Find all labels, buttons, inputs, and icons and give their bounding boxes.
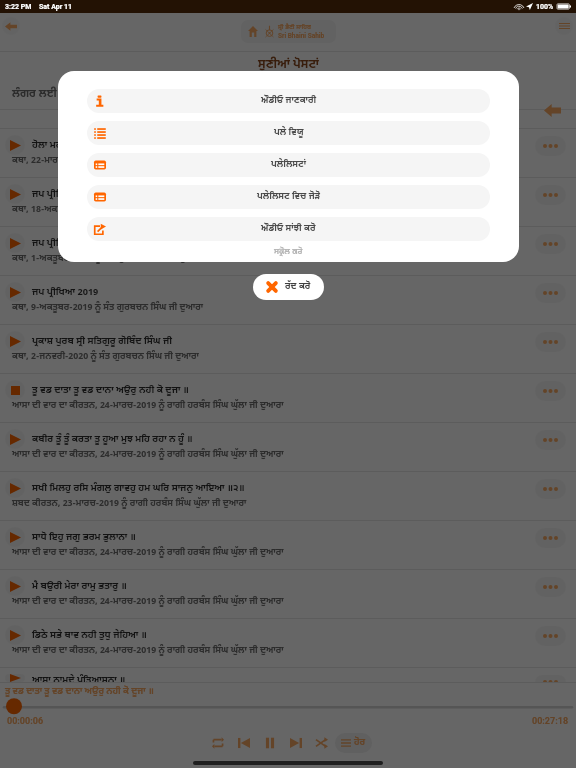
staticText: ਲੰਗਰ ਲਈ ਦਿੱਤੀ ਗਈ ਸੇਵਾ bbox=[12, 87, 121, 101]
button[interactable]: Shuffle bbox=[309, 730, 335, 756]
staticText: ਸ੍ਰੀ ਭੈਣੀ ਸਾਹਿਬ bbox=[278, 24, 311, 32]
button[interactable]: Menu bbox=[555, 17, 573, 35]
button[interactable]: ਸ੍ਰੀ ਭੈਣੀ ਸਾਹਿਬ bbox=[241, 20, 336, 43]
staticText: ਜਪ ਪ੍ਰੀਖਿਆ ਦੇ ਸਬੰਧ ਵਿਚ bbox=[32, 188, 123, 200]
button[interactable]: Play bbox=[0, 276, 576, 325]
button[interactable]: Pause bbox=[5, 380, 25, 400]
button[interactable]: Play bbox=[5, 233, 25, 253]
staticText: 3:22 PM bbox=[5, 3, 32, 11]
staticText: ਆਸਾ ਨਾਮਦੇ ਪ੍ਰੰਤਿਆਸਨਾ ॥ bbox=[32, 674, 126, 682]
button[interactable]: ਪਲੇਲਿਸਟ ਵਿਚ ਜੋੜੋ bbox=[87, 185, 490, 209]
staticText: ਹੋਲਾ ਮਹੱਲਾ ਦੇ ਸਬੰਧ ਵਿਚ bbox=[32, 139, 119, 151]
button[interactable]: More options bbox=[535, 675, 566, 682]
staticText: ਔਡੀਓ ਜਾਣਕਾਰੀ bbox=[261, 95, 317, 107]
staticText: ਕਬੀਰ ਤੂੰ ਤੂੰ ਕਰਤਾ ਤੂ ਹੂਆ ਮੁਝ ਮਹਿ ਰਹਾ ਨ ਹ… bbox=[32, 433, 193, 445]
staticText: ਪਲੇਲਿਸਟਾਂ bbox=[271, 159, 306, 171]
button[interactable]: More options bbox=[535, 283, 566, 303]
button[interactable]: Next bbox=[283, 730, 309, 756]
button[interactable]: Play bbox=[0, 570, 576, 619]
button[interactable]: Previous page bbox=[538, 96, 566, 124]
staticText: ਕਥਾ, 2-ਜਨਵਰੀ-2020 ਨੂੰ ਸੰਤ ਗੁਰਬਚਨ ਸਿੰਘ ਜੀ… bbox=[12, 351, 199, 363]
button[interactable]: Play bbox=[0, 129, 576, 178]
button[interactable]: Play bbox=[0, 423, 576, 472]
staticText: ਮੈ ਬਉਰੀ ਮੇਰਾ ਰਾਮੁ ਭਤਾਰੁ ॥ bbox=[32, 580, 127, 592]
button[interactable]: ਪਲੇਲਿਸਟਾਂ bbox=[87, 153, 490, 177]
button[interactable]: Play bbox=[5, 184, 25, 204]
button[interactable]: More options bbox=[535, 136, 566, 156]
staticText: ਸਖੀ ਮਿਲਹੁ ਰਸਿ ਮੰਗਲੁ ਗਾਵਹੁ ਹਮ ਘਰਿ ਸਾਜਨੁ ਆ… bbox=[32, 482, 245, 494]
staticText: ਸੁਣੀਆਂ ਪੋਸਟਾਂ bbox=[258, 57, 319, 73]
staticText: 3:22 PM bbox=[5, 3, 32, 11]
staticText: ਕਥਾ, 22-ਮਾਰਚ-2019 ਨੂੰ ਸੰਤ ਗੁਰਬਚਨ ਸਿੰਘ ਜੀ… bbox=[12, 155, 198, 167]
staticText: ਆਸਾ ਦੀ ਵਾਰ ਦਾ ਕੀਰਤਨ, 24-ਮਾਰਚ-2019 ਨੂੰ ਰਾ… bbox=[12, 449, 284, 461]
staticText: Sat Apr 11 bbox=[39, 3, 73, 11]
staticText: ਔਡੀਓ ਸਾਂਝੀ ਕਰੋ bbox=[261, 223, 316, 235]
button[interactable]: ਔਡੀਓ ਸਾਂਝੀ ਕਰੋ bbox=[87, 217, 490, 241]
staticText: ਸਕ੍ਰੋਲ ਕਰੋ bbox=[274, 247, 303, 257]
button[interactable]: ਹੋਰ bbox=[335, 733, 372, 753]
button[interactable]: More options bbox=[535, 381, 566, 401]
staticText: ਕਥਾ, 18-ਅਕਤੂਬਰ-2019 ਨੂੰ ਸੰਤ ਗੁਰਬਚਨ ਸਿੰਘ … bbox=[12, 204, 209, 216]
staticText: 00:27:18 bbox=[532, 716, 569, 727]
staticText: ਆਸਾ ਦੀ ਵਾਰ ਦਾ ਕੀਰਤਨ, 24-ਮਾਰਚ-2019 ਨੂੰ ਰਾ… bbox=[12, 596, 284, 608]
button[interactable]: Play bbox=[5, 527, 25, 547]
staticText: ਪਲੇ ਵਿਯੂ bbox=[274, 127, 304, 139]
button[interactable]: ਪਲੇ ਵਿਯੂ bbox=[87, 121, 490, 145]
button[interactable]: Play bbox=[0, 227, 576, 276]
staticText: ਆਸਾ ਦੀ ਵਾਰ ਦਾ ਕੀਰਤਨ, 24-ਮਾਰਚ-2019 ਨੂੰ ਰਾ… bbox=[12, 645, 284, 657]
staticText: Sat Apr 11 bbox=[39, 3, 73, 11]
staticText: ਆਸਾ ਦੀ ਵਾਰ ਦਾ ਕੀਰਤਨ, 24-ਮਾਰਚ-2019 ਨੂੰ ਰਾ… bbox=[12, 400, 284, 412]
button[interactable]: Play bbox=[0, 178, 576, 227]
staticText: ਆਸਾ ਦੀ ਵਾਰ ਦਾ ਕੀਰਤਨ, 24-ਮਾਰਚ-2019 ਨੂੰ ਰਾ… bbox=[12, 547, 284, 559]
staticText: 100% bbox=[536, 3, 554, 11]
button[interactable]: Seek bbox=[0, 700, 576, 714]
button[interactable]: ਔਡੀਓ ਜਾਣਕਾਰੀ bbox=[87, 89, 490, 113]
staticText: Sri Bhaini Sahib bbox=[278, 32, 325, 40]
button[interactable]: Play bbox=[0, 521, 576, 570]
staticText: ਤੂ ਵਡ ਦਾਤਾ ਤੂ ਵਡ ਦਾਨਾ ਅਉਰੁ ਨਹੀ ਕੋ ਦੂਜਾ ॥ bbox=[5, 686, 154, 698]
button[interactable]: More options bbox=[535, 430, 566, 450]
staticText: ਡਿਠੇ ਸਭੇ ਥਾਵ ਨਹੀ ਤੁਧੁ ਜੇਹਿਆ ॥ bbox=[32, 629, 147, 641]
button[interactable]: More options bbox=[535, 234, 566, 254]
button[interactable]: Repeat bbox=[205, 730, 231, 756]
button[interactable]: Play bbox=[5, 625, 25, 645]
button[interactable]: More options bbox=[535, 528, 566, 548]
button[interactable]: More options bbox=[535, 479, 566, 499]
button[interactable]: ਰੱਦ ਕਰੋ bbox=[253, 274, 324, 300]
staticText: ਰੱਦ ਕਰੋ bbox=[285, 281, 311, 293]
staticText: ਸ਼ਬਦ ਕੀਰਤਨ, 23-ਮਾਰਚ-2019 ਨੂੰ ਰਾਗੀ ਹਰਬੰਸ … bbox=[12, 498, 247, 510]
button[interactable]: Pause bbox=[0, 374, 576, 423]
button[interactable]: Back bbox=[2, 17, 20, 35]
staticText: ਹੋਰ bbox=[354, 737, 366, 749]
button[interactable]: Play bbox=[5, 331, 25, 351]
button[interactable]: Previous bbox=[231, 730, 257, 756]
button[interactable]: Play bbox=[0, 619, 576, 668]
staticText: ਜਪ ਪ੍ਰੀਖਿਆ ਦੇ ਸਬੰਧ ਵਿਚ bbox=[32, 237, 123, 249]
staticText: ਪ੍ਰਕਾਸ਼ ਪੁਰਬ ਸ੍ਰੀ ਸਤਿਗੁਰੂ ਗੋਬਿੰਦ ਸਿੰਘ ਜੀ bbox=[32, 335, 173, 347]
button[interactable]: Play bbox=[5, 478, 25, 498]
button[interactable]: Play bbox=[5, 674, 25, 682]
button[interactable]: More options bbox=[535, 577, 566, 597]
staticText: ਕਥਾ, 1-ਅਕਤੂਬਰ-2019 ਨੂੰ ਸੰਤ ਗੁਰਬਚਨ ਸਿੰਘ ਜ… bbox=[12, 253, 204, 265]
button[interactable]: Pause bbox=[257, 730, 283, 756]
button[interactable]: Play bbox=[0, 472, 576, 521]
staticText: 100% bbox=[536, 3, 554, 11]
staticText: ਕਥਾ, 9-ਅਕਤੂਬਰ-2019 ਨੂੰ ਸੰਤ ਗੁਰਬਚਨ ਸਿੰਘ ਜ… bbox=[12, 302, 204, 314]
staticText: ਸਾਧੋ ਇਹੁ ਜਗੁ ਭਰਮ ਭੁਲਾਨਾ ॥ bbox=[32, 531, 136, 543]
staticText: ਤੂ ਵਡ ਦਾਤਾ ਤੂ ਵਡ ਦਾਨਾ ਅਉਰੁ ਨਹੀ ਕੋ ਦੂਜਾ ॥ bbox=[32, 384, 189, 396]
button[interactable]: Play bbox=[5, 576, 25, 596]
button[interactable]: More options bbox=[535, 185, 566, 205]
button[interactable]: More options bbox=[535, 626, 566, 646]
staticText: ਪਲੇਲਿਸਟ ਵਿਚ ਜੋੜੋ bbox=[257, 191, 321, 203]
staticText: ਜਪ ਪ੍ਰੀਖਿਆ 2019 bbox=[32, 286, 99, 298]
button[interactable]: Play bbox=[0, 668, 576, 682]
staticText: 00:00:06 bbox=[7, 716, 44, 727]
button[interactable]: Play bbox=[5, 135, 25, 155]
button[interactable]: Play bbox=[5, 282, 25, 302]
button[interactable]: Play bbox=[0, 325, 576, 374]
button[interactable]: More options bbox=[535, 332, 566, 352]
button[interactable]: Play bbox=[5, 429, 25, 449]
